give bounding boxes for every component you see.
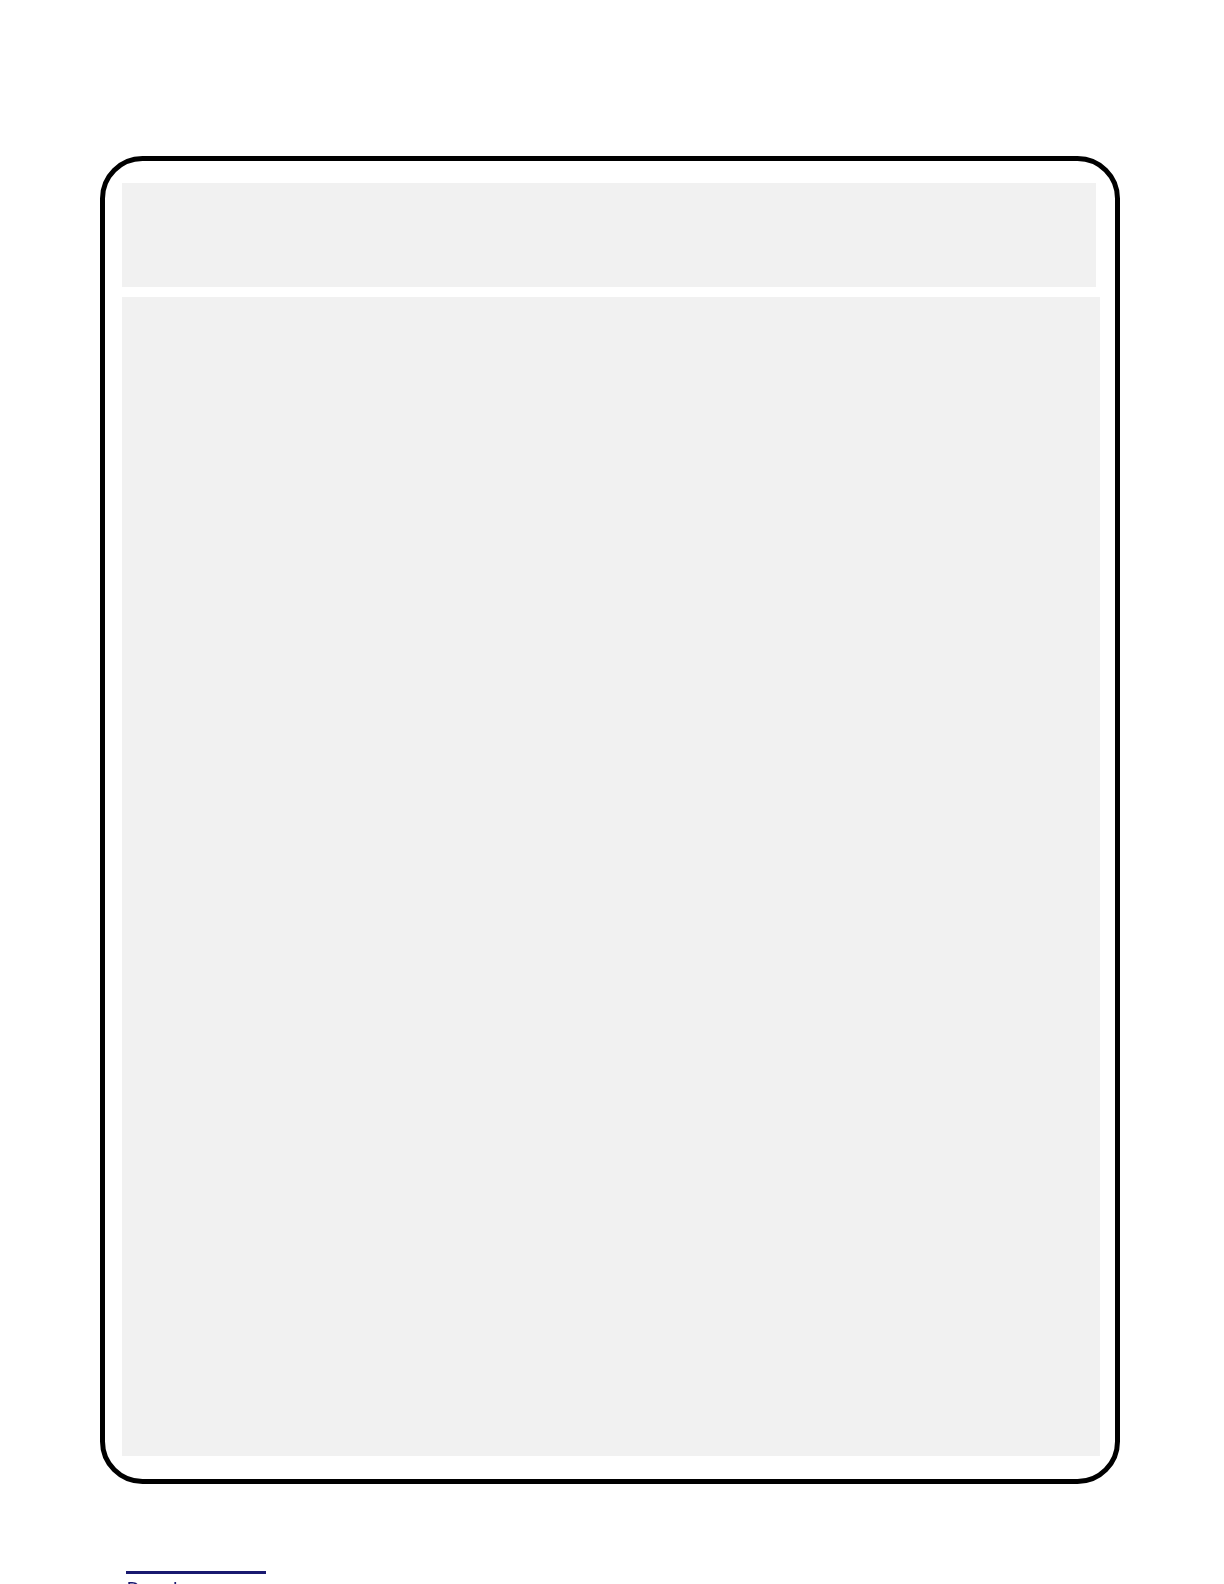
staticText: Read more	[126, 1574, 239, 1584]
button[interactable]: Read more	[126, 1552, 266, 1584]
